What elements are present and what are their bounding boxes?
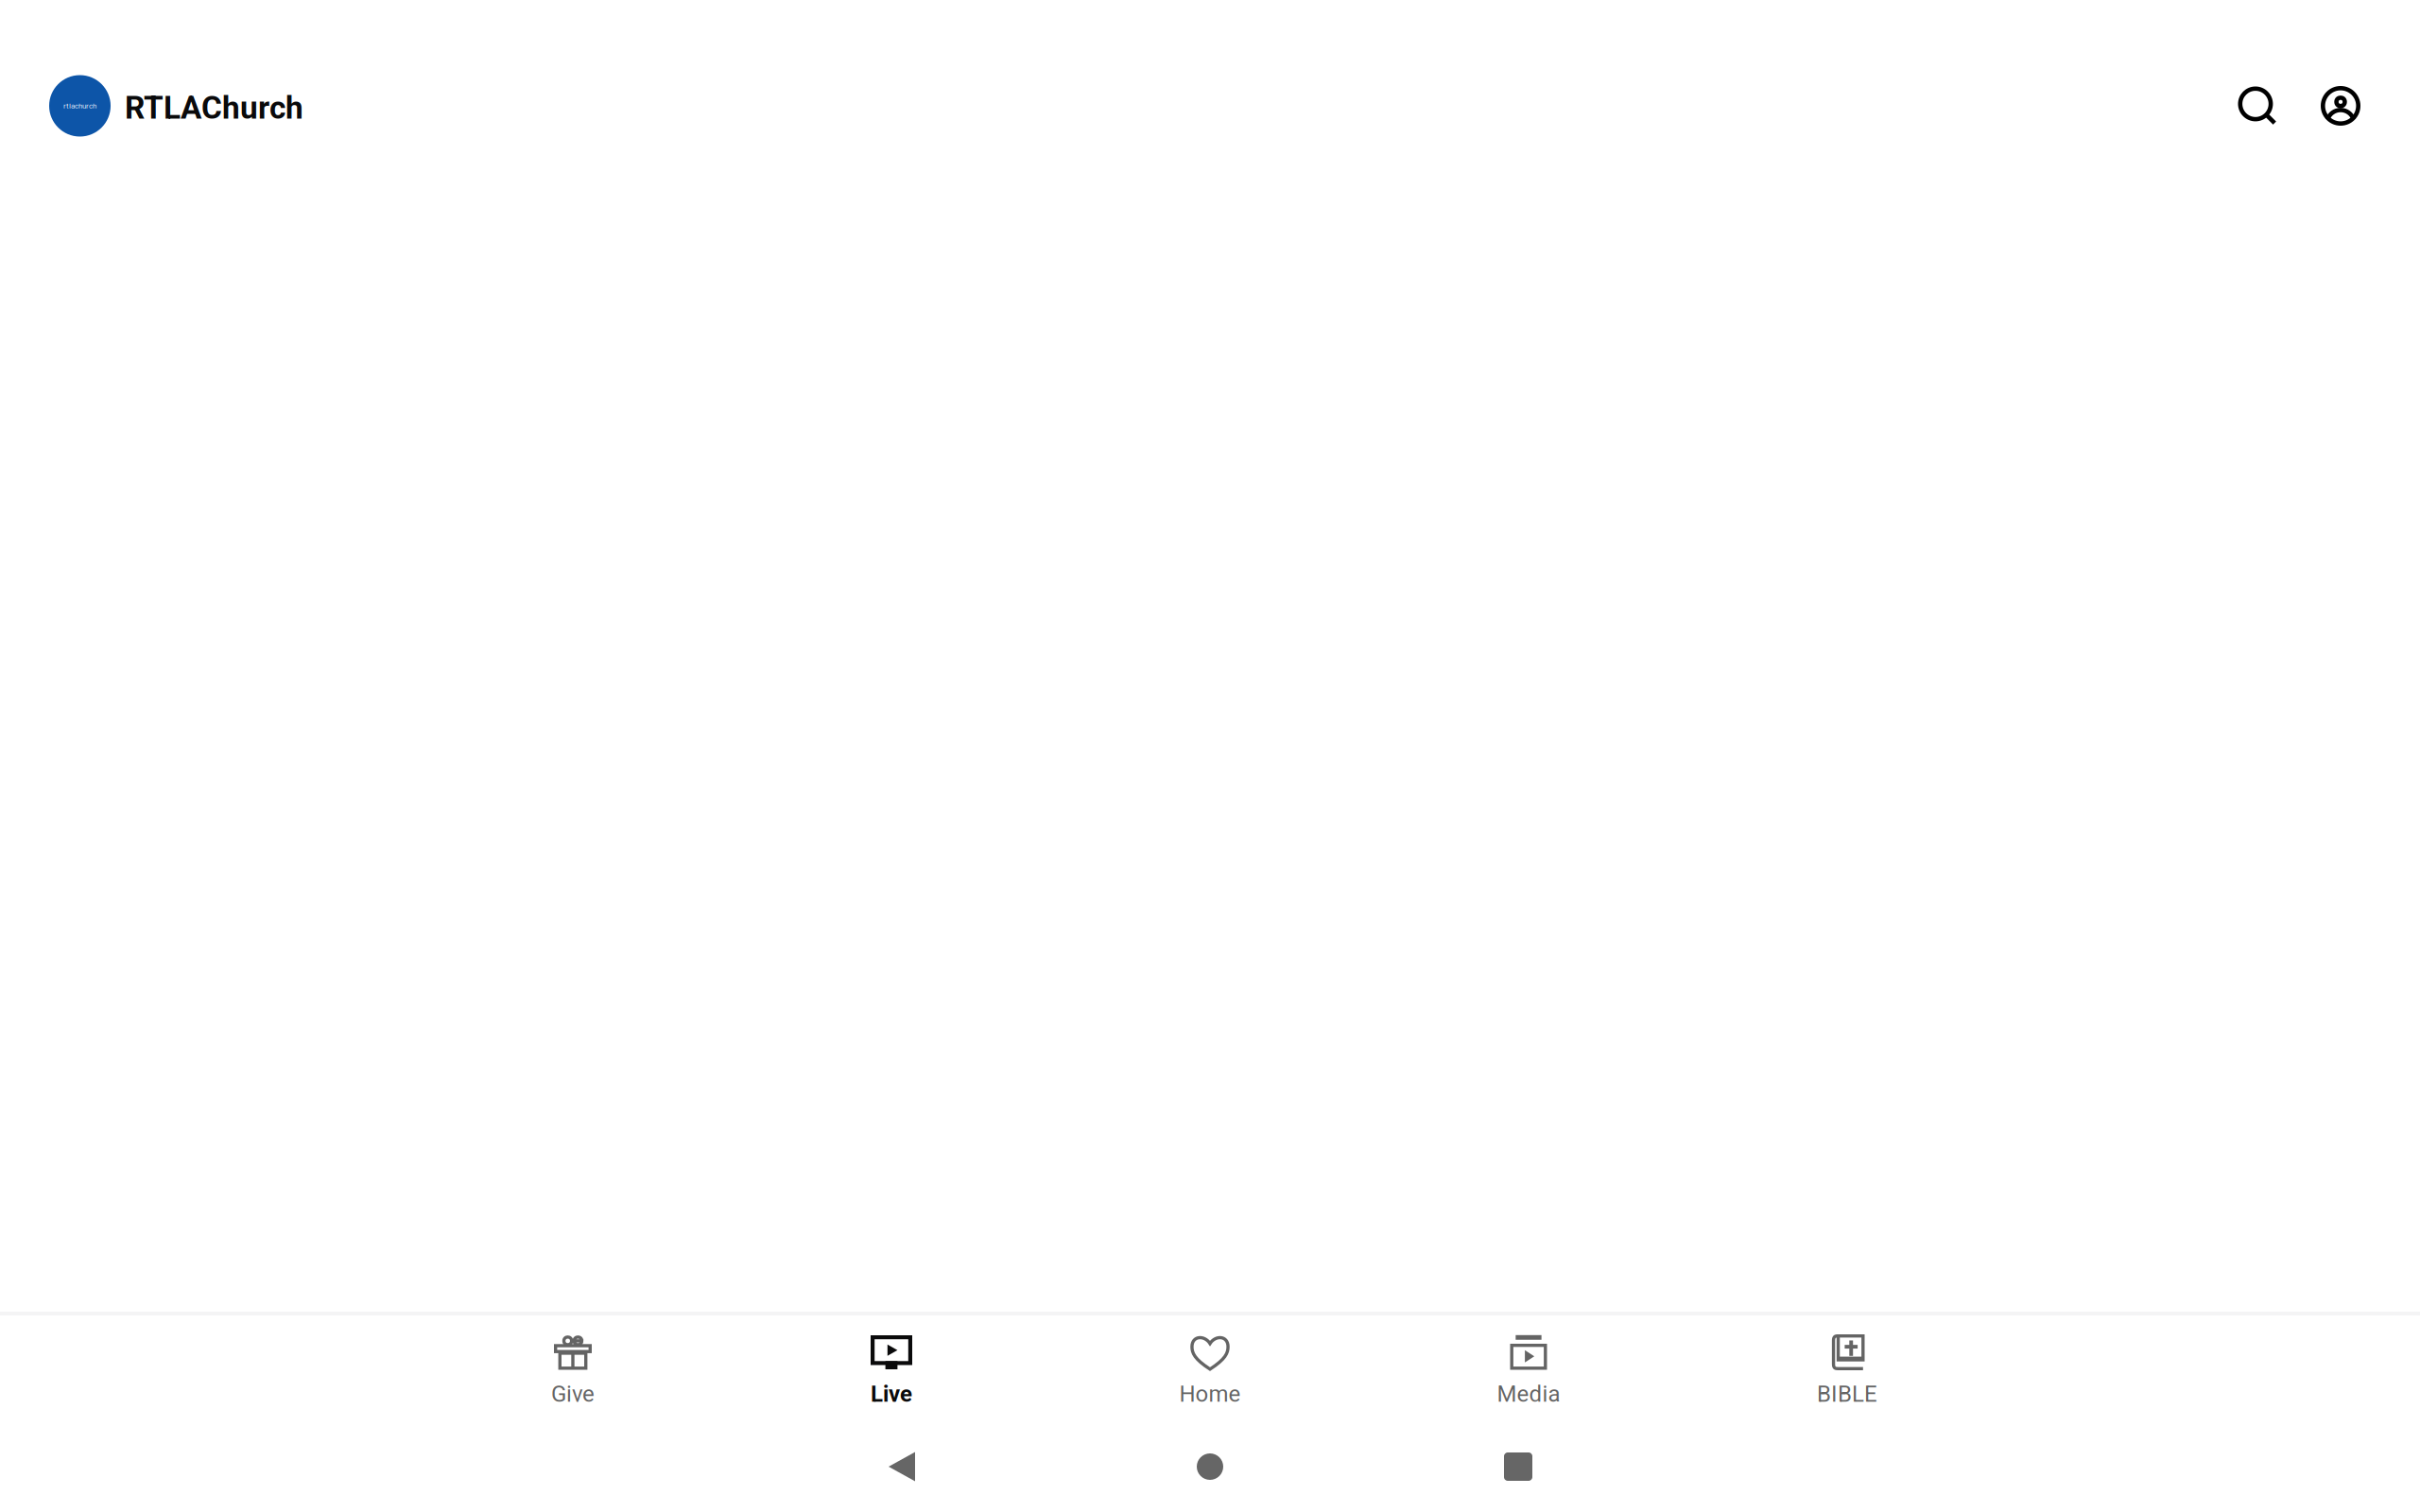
button[interactable]: Account [2299,59,2382,153]
staticText: Give [551,1381,595,1407]
button[interactable]: Give [414,1315,732,1417]
staticText: Media [1497,1381,1560,1407]
button[interactable]: Media [1369,1315,1688,1417]
button[interactable]: Recent apps [1364,1417,1672,1512]
staticText: RTLAChurch [125,89,303,126]
button[interactable]: Search [2216,59,2299,153]
button[interactable]: Home [1051,1315,1369,1417]
button[interactable]: rtlachurch [0,59,322,153]
staticText: Home [1179,1381,1241,1407]
staticText: rtlachurch [63,101,96,110]
staticText: BIBLE [1817,1381,1877,1407]
button[interactable]: Back [748,1417,1056,1512]
button[interactable]: BIBLE [1688,1315,2006,1417]
button[interactable]: Home [1056,1417,1364,1512]
staticText: Live [871,1381,912,1407]
button[interactable]: Live [732,1315,1051,1417]
